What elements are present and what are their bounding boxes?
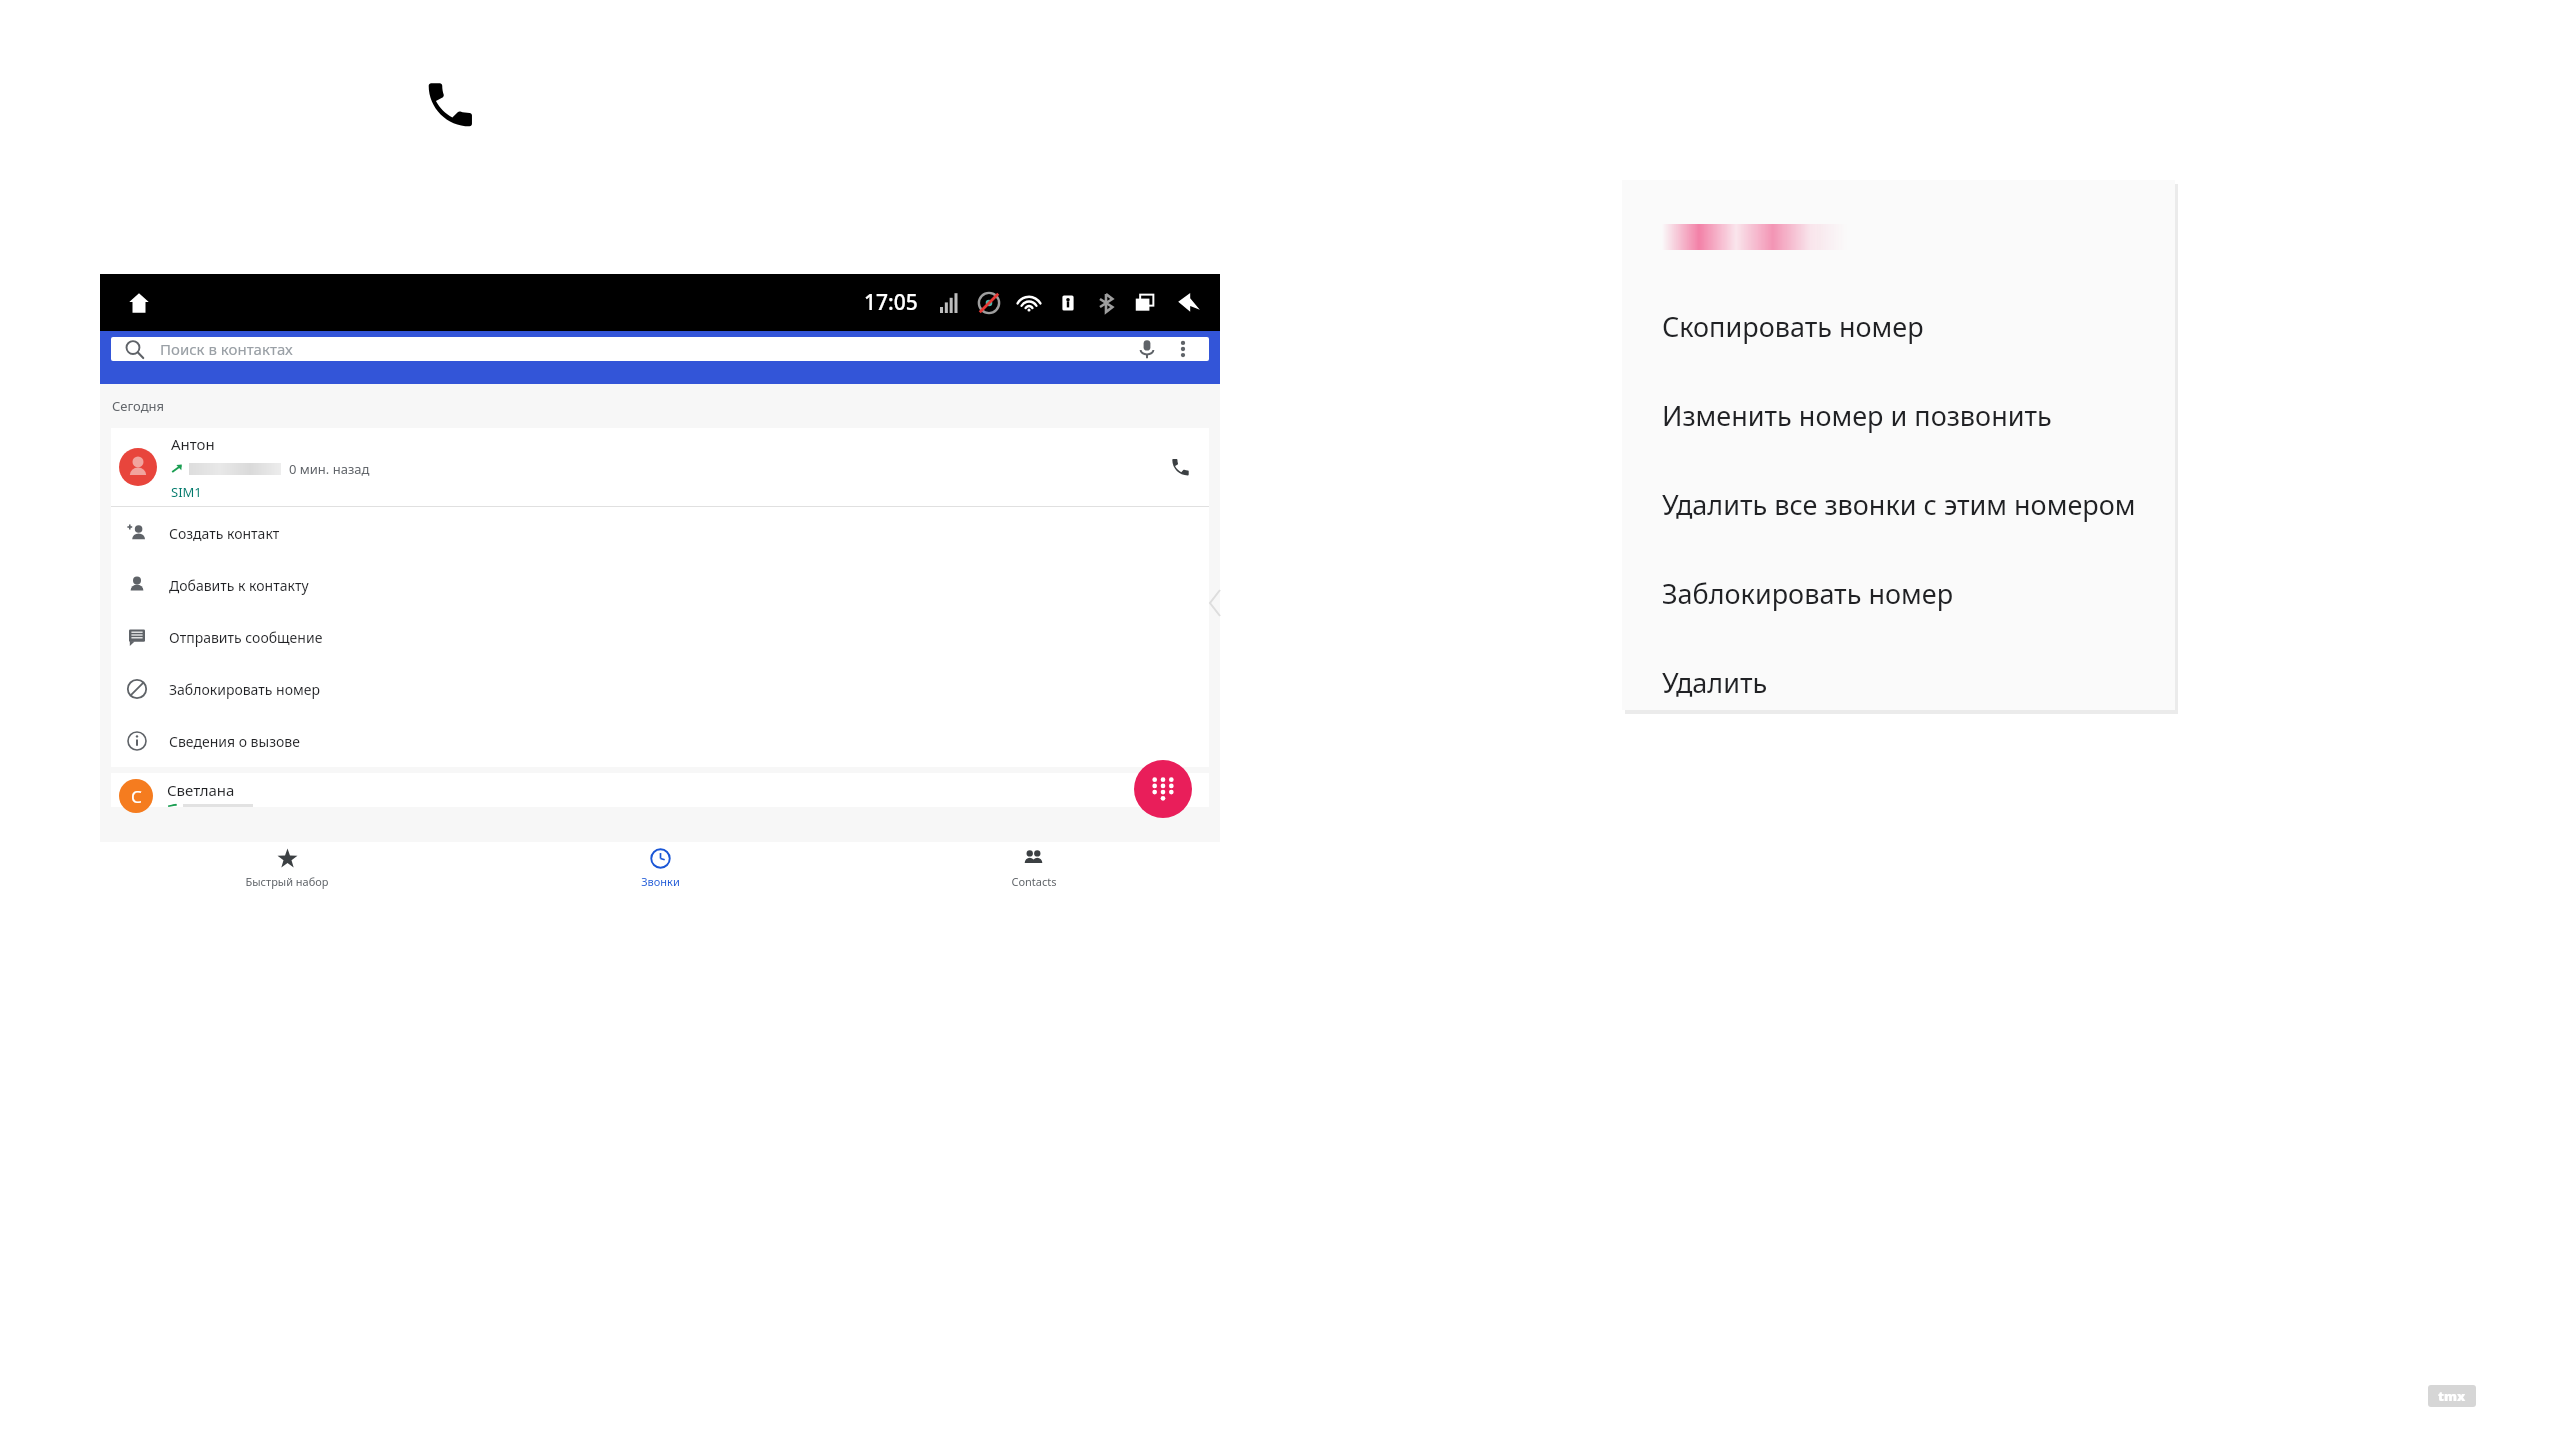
button[interactable]: Антон [111,428,1209,506]
button[interactable]: Изменить номер и позвонить [1662,397,2175,434]
staticText: Создать контакт [169,524,280,543]
button[interactable]: Contacts [847,842,1220,894]
staticText: Заблокировать номер [1662,575,1954,612]
staticText: SIM1 [171,483,202,501]
staticText: 0 мин. назад [289,460,370,478]
button[interactable]: Удалить все звонки с этим номером [1662,486,2175,523]
staticText: Contacts [1011,874,1057,889]
staticText: Удалить [1662,664,1768,701]
button[interactable]: Поиск в контактах [111,337,1209,361]
button[interactable]: Удалить [1662,664,2175,701]
button[interactable]: Добавить к контакту [111,559,1209,611]
staticText: Сведения о вызове [169,732,300,751]
staticText: Быстрый набор [245,874,329,889]
button[interactable]: С [111,773,1209,807]
button[interactable]: Заблокировать номер [1662,575,2175,612]
staticText: Удалить все звонки с этим номером [1662,486,2136,523]
staticText: С [131,785,142,808]
button[interactable]: Back [1176,290,1202,316]
button[interactable]: Dialpad [1134,760,1192,818]
staticText: Заблокировать номер [169,680,320,699]
button[interactable]: More options [1171,337,1195,361]
staticText: Изменить номер и позвонить [1662,397,2052,434]
button[interactable]: Быстрый набор [100,842,474,894]
button[interactable]: Home [124,288,154,318]
staticText: Отправить сообщение [169,628,323,647]
staticText: 17:05 [864,288,918,317]
button[interactable]: Заблокировать номер [111,663,1209,715]
button[interactable]: Скопировать номер [1662,308,2175,345]
staticText: Сегодня [112,397,165,415]
button[interactable]: Создать контакт [111,507,1209,559]
staticText: Антон [171,434,215,454]
button[interactable]: Call [1159,446,1201,488]
staticText: Добавить к контакту [169,576,309,595]
button[interactable]: Звонки [474,842,847,894]
staticText: Звонки [641,874,680,889]
button[interactable]: Сведения о вызове [111,715,1209,767]
staticText: tmx [2438,1387,2466,1405]
staticText: Скопировать номер [1662,308,1924,345]
staticText: Светлана [167,780,235,800]
button[interactable]: Voice search [1135,337,1159,361]
button[interactable]: Отправить сообщение [111,611,1209,663]
staticText: Поиск в контактах [160,339,293,359]
